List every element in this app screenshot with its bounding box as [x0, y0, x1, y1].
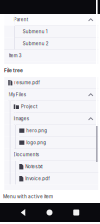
button[interactable]: Notes.txt: [4, 161, 98, 172]
staticText: hero.png: [26, 128, 47, 133]
button[interactable]: resume.pdf: [4, 77, 98, 88]
staticText: Parent: [14, 17, 28, 22]
staticText: File tree: [4, 67, 23, 73]
button[interactable]: Images: [4, 113, 98, 124]
staticText: Submenu 2: [23, 41, 49, 46]
button[interactable]: Parent: [4, 14, 98, 25]
staticText: Project: [21, 104, 37, 109]
button[interactable]: Project: [4, 101, 98, 112]
button[interactable]: Invoice.pdf: [4, 173, 98, 184]
button[interactable]: Item 3: [4, 50, 98, 61]
button[interactable]: My Files: [4, 89, 98, 100]
staticText: Invoice.pdf: [25, 176, 50, 181]
button[interactable]: Submenu 1: [4, 26, 98, 37]
button[interactable]: Submenu 2: [4, 38, 98, 49]
button[interactable]: hero.png: [4, 125, 98, 136]
button[interactable]: Recents: [73, 209, 79, 215]
button[interactable]: Documents: [4, 149, 98, 160]
staticText: logo.png: [26, 140, 46, 145]
staticText: Submenu 1: [23, 29, 48, 34]
staticText: Images: [14, 116, 29, 121]
button[interactable]: Home: [46, 209, 52, 215]
staticText: My Files: [9, 92, 26, 97]
button[interactable]: Back: [21, 209, 26, 216]
staticText: Notes.txt: [25, 164, 42, 169]
staticText: Documents: [14, 152, 39, 157]
staticText: resume.pdf: [14, 80, 40, 85]
button[interactable]: logo.png: [4, 137, 98, 148]
staticText: Item 3: [9, 53, 22, 58]
staticText: Menu with active item: [3, 194, 53, 199]
